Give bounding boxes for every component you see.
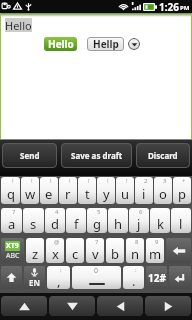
staticText: z [32,245,39,263]
staticText: x [52,245,59,263]
button[interactable]: c [66,238,84,263]
button[interactable]: ; [47,266,70,289]
button[interactable]: Symbols [146,266,167,289]
staticText: c [72,245,79,263]
button[interactable]: Backspace [166,238,191,263]
button[interactable]: ! [97,177,115,204]
staticText: 7 [95,238,99,246]
staticText: o [159,185,167,203]
button[interactable]: ! [78,177,96,204]
staticText: 3 [163,177,167,185]
button[interactable]: Send [2,143,57,168]
staticText: ! [31,177,33,185]
staticText: j [137,215,141,233]
button[interactable]: s [23,208,44,233]
button[interactable]: b [106,238,124,263]
button[interactable]: ! [40,177,58,204]
button[interactable]: k [150,208,170,233]
staticText: a [8,215,16,233]
staticText: t [85,185,90,203]
button[interactable]: 2 [135,177,153,204]
staticText: : [135,266,137,274]
staticText: . [132,272,136,289]
staticText: 8 [135,238,139,246]
button[interactable]: Hellp [87,37,124,51]
button[interactable]: 7 [1,208,22,233]
staticText: n [131,245,140,263]
staticText: 7 [12,208,16,216]
staticText: PM [180,4,190,12]
button[interactable]: More suggestions [128,38,140,50]
button[interactable]: 7 [86,238,104,263]
staticText: Hello [48,37,74,51]
staticText: s [30,215,37,233]
staticText: Discard [148,150,178,161]
button[interactable]: 9 [146,238,164,263]
staticText: q [7,185,15,203]
staticText: 4 [55,208,59,216]
staticText: ! [88,177,90,185]
staticText: u [121,185,130,203]
button[interactable]: 5 [87,208,107,233]
button[interactable]: z [26,238,44,263]
staticText: h [114,215,123,233]
button[interactable]: Down [49,296,95,316]
staticText: ! [50,177,52,185]
button[interactable]: Shift [1,266,22,289]
staticText: ! [126,177,128,185]
staticText: EN [29,277,40,288]
staticText: Save as draft [71,150,123,161]
button[interactable]: h [108,208,128,233]
staticText: @ [54,238,60,246]
staticText: XT9 [6,241,19,251]
button[interactable]: : [123,266,144,289]
staticText: ! [107,177,109,185]
button[interactable]: Discard [136,143,190,168]
staticText: e [45,185,53,203]
staticText: Send [20,150,40,161]
button[interactable]: 4 [45,208,65,233]
staticText: b [111,245,119,263]
staticText: v [92,245,99,263]
staticText: 6 [139,208,143,216]
button[interactable]: Right [145,296,191,316]
button[interactable]: Enter [169,266,191,289]
staticText: 0 [94,266,99,276]
staticText: ABC [6,251,20,261]
staticText: m [149,245,162,263]
staticText: 9 [155,238,159,246]
button[interactable]: Toggle XT9 [1,238,24,263]
button[interactable]: Space [72,266,121,289]
button[interactable]: 8 [126,238,144,263]
staticText: ! [12,177,14,185]
staticText: 2 [144,177,148,185]
button[interactable]: ! [116,177,134,204]
staticText: g [93,215,101,233]
button[interactable]: l [171,208,191,233]
staticText: + [182,177,186,185]
staticText: Hellp [93,37,119,51]
button[interactable]: + [173,177,191,204]
button[interactable]: Up [1,296,47,316]
staticText: , [57,272,61,289]
button[interactable]: @ [46,238,64,263]
button[interactable]: ! [1,177,20,204]
staticText: 5 [97,208,101,216]
staticText: p [178,185,186,203]
staticText: 12# [148,271,166,285]
button[interactable]: f [66,208,86,233]
staticText: l [179,215,183,233]
button[interactable]: Save as draft [61,143,132,168]
button[interactable]: 6 [129,208,149,233]
staticText: f [74,215,79,233]
button[interactable]: Voice input, English [24,266,45,289]
button[interactable]: 3 [154,177,172,204]
staticText: ! [69,177,71,185]
staticText: d [51,215,59,233]
button[interactable]: Left [97,296,143,316]
button[interactable]: Hello [44,37,77,51]
button[interactable]: ! [21,177,39,204]
button[interactable]: ! [59,177,77,204]
button[interactable]: Hello [5,18,32,32]
staticText: Hello [5,18,32,32]
